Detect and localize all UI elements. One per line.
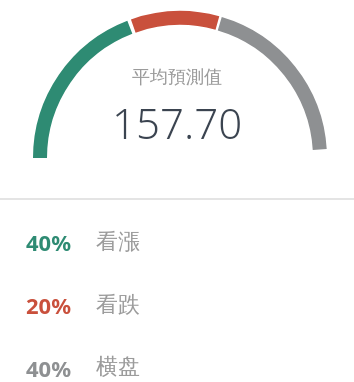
button[interactable]: 20% <box>0 287 354 323</box>
other: Average forecast gauge <box>0 0 354 198</box>
staticText: 40% <box>26 353 72 379</box>
button[interactable]: 40% <box>0 224 354 260</box>
staticText: 看跌 <box>96 291 140 319</box>
staticText: 157.70 <box>112 94 243 151</box>
staticText: 20% <box>26 290 72 320</box>
staticText: 40% <box>26 227 72 257</box>
button[interactable]: 40% <box>0 350 354 382</box>
staticText: 看漲 <box>96 228 140 256</box>
staticText: 平均預測值 <box>132 66 222 89</box>
staticText: 横盘 <box>96 353 140 379</box>
